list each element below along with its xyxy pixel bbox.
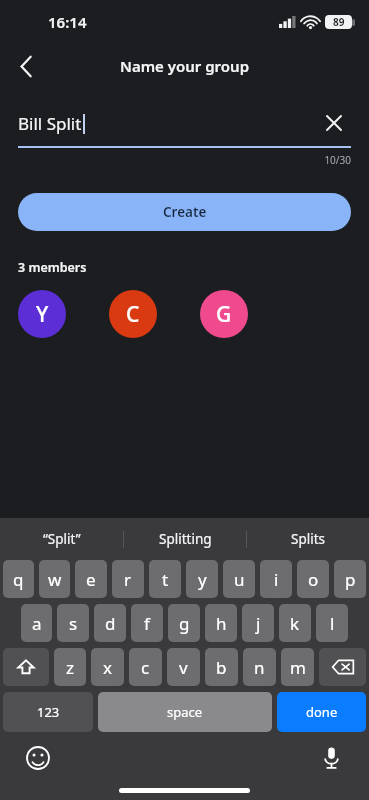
staticText: s bbox=[69, 612, 78, 635]
staticText: 123 bbox=[37, 703, 60, 721]
staticText: j bbox=[256, 612, 261, 635]
staticText: done bbox=[306, 703, 338, 721]
button[interactable]: Splits bbox=[247, 518, 369, 560]
staticText: l bbox=[330, 612, 335, 635]
button[interactable]: i bbox=[260, 560, 292, 598]
button[interactable]: Voice input bbox=[315, 742, 347, 774]
staticText: 3 members bbox=[18, 259, 87, 276]
button[interactable]: Clear text bbox=[317, 106, 351, 140]
button[interactable]: j bbox=[242, 604, 274, 642]
button[interactable]: space bbox=[98, 692, 272, 732]
button[interactable]: C bbox=[109, 290, 157, 338]
button[interactable]: s bbox=[57, 604, 89, 642]
staticText: Y bbox=[36, 300, 49, 329]
button[interactable]: v bbox=[167, 648, 200, 686]
staticText: q bbox=[13, 568, 24, 591]
button[interactable]: Back bbox=[6, 46, 46, 86]
button[interactable]: e bbox=[75, 560, 107, 598]
button[interactable]: Y bbox=[18, 290, 66, 338]
button[interactable]: b bbox=[205, 648, 238, 686]
button[interactable]: Backspace bbox=[319, 648, 366, 686]
button[interactable]: o bbox=[297, 560, 329, 598]
button[interactable]: r bbox=[112, 560, 144, 598]
staticText: b bbox=[216, 656, 227, 679]
staticText: 89 bbox=[333, 15, 345, 29]
staticText: G bbox=[216, 300, 232, 329]
staticText: v bbox=[179, 656, 188, 679]
staticText: 16:14 bbox=[48, 12, 87, 32]
staticText: y bbox=[198, 568, 207, 591]
staticText: 10/30 bbox=[18, 153, 351, 167]
staticText: C bbox=[126, 300, 140, 329]
button[interactable]: m bbox=[281, 648, 314, 686]
staticText: w bbox=[48, 568, 62, 591]
button[interactable]: u bbox=[223, 560, 255, 598]
button[interactable]: w bbox=[39, 560, 70, 598]
button[interactable]: 123 bbox=[3, 692, 93, 732]
staticText: z bbox=[66, 656, 74, 679]
staticText: “Split” bbox=[43, 530, 81, 548]
button[interactable]: G bbox=[200, 290, 248, 338]
staticText: Create bbox=[163, 203, 207, 221]
staticText: h bbox=[216, 612, 227, 635]
staticText: p bbox=[345, 568, 356, 591]
button[interactable]: done bbox=[277, 692, 366, 732]
button[interactable]: Emoji bbox=[22, 742, 54, 774]
staticText: u bbox=[234, 568, 245, 591]
staticText: r bbox=[124, 568, 132, 591]
button[interactable]: x bbox=[91, 648, 124, 686]
staticText: o bbox=[308, 568, 319, 591]
staticText: f bbox=[144, 612, 150, 635]
button[interactable]: d bbox=[94, 604, 126, 642]
button[interactable]: h bbox=[205, 604, 237, 642]
button[interactable]: l bbox=[316, 604, 348, 642]
staticText: m bbox=[290, 656, 306, 679]
button[interactable]: c bbox=[129, 648, 162, 686]
staticText: e bbox=[86, 568, 96, 591]
staticText: Splitting bbox=[159, 530, 212, 548]
staticText: n bbox=[254, 656, 265, 679]
button[interactable]: Splitting bbox=[124, 518, 246, 560]
button[interactable]: n bbox=[243, 648, 276, 686]
staticText: c bbox=[141, 656, 150, 679]
button[interactable]: a bbox=[21, 604, 52, 642]
staticText: t bbox=[162, 568, 169, 591]
button[interactable]: p bbox=[334, 560, 366, 598]
staticText: a bbox=[32, 612, 42, 635]
staticText: d bbox=[105, 612, 116, 635]
staticText: Name your group bbox=[120, 56, 250, 76]
button[interactable]: y bbox=[186, 560, 218, 598]
staticText: x bbox=[103, 656, 112, 679]
button[interactable]: “Split” bbox=[0, 518, 123, 560]
button[interactable]: q bbox=[3, 560, 34, 598]
button[interactable]: t bbox=[149, 560, 181, 598]
staticText: i bbox=[274, 568, 279, 591]
button[interactable]: z bbox=[54, 648, 86, 686]
staticText: Bill Split bbox=[18, 112, 82, 135]
staticText: k bbox=[290, 612, 300, 635]
button[interactable]: k bbox=[279, 604, 311, 642]
button[interactable]: Shift bbox=[3, 648, 49, 686]
button[interactable]: g bbox=[168, 604, 200, 642]
button[interactable]: f bbox=[131, 604, 163, 642]
staticText: Splits bbox=[291, 530, 326, 548]
button[interactable]: Create bbox=[18, 193, 351, 231]
staticText: g bbox=[179, 612, 190, 635]
staticText: space bbox=[167, 703, 203, 721]
